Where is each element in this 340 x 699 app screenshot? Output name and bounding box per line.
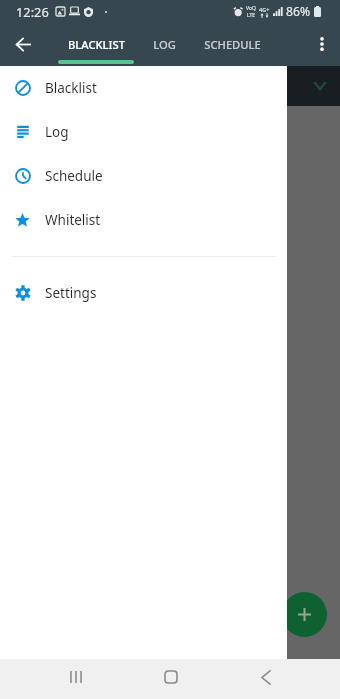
staticText: BLACKLIST <box>68 37 125 52</box>
button[interactable]: More options <box>302 24 340 64</box>
button[interactable]: Whitelist <box>0 198 287 242</box>
button[interactable]: Back <box>3 24 43 64</box>
staticText: Whitelist <box>45 211 101 229</box>
staticText: Log <box>45 123 69 141</box>
staticText: Settings <box>45 284 97 302</box>
button[interactable]: Blacklist <box>0 66 287 110</box>
button[interactable]: Log <box>0 110 287 154</box>
button[interactable]: Add <box>282 592 327 637</box>
staticText: Schedule <box>45 167 103 185</box>
staticText: SCHEDULE <box>204 37 261 52</box>
button[interactable]: Settings <box>0 271 287 315</box>
staticText: 4G+ <box>259 6 270 13</box>
staticText: VoQ <box>246 5 256 12</box>
button[interactable]: Back <box>246 657 286 697</box>
button[interactable]: BLACKLIST <box>58 22 134 66</box>
button[interactable]: Recent apps <box>56 657 96 697</box>
button[interactable]: Schedule <box>0 154 287 198</box>
button[interactable]: SCHEDULE <box>194 22 270 66</box>
button[interactable]: Home <box>151 657 191 697</box>
staticText: Blacklist <box>45 79 97 97</box>
staticText: 12:26 <box>16 3 49 20</box>
button[interactable]: LOG <box>134 22 194 66</box>
staticText: LOG <box>153 37 176 52</box>
staticText: LTE <box>247 12 256 19</box>
staticText: 86% <box>286 3 311 20</box>
